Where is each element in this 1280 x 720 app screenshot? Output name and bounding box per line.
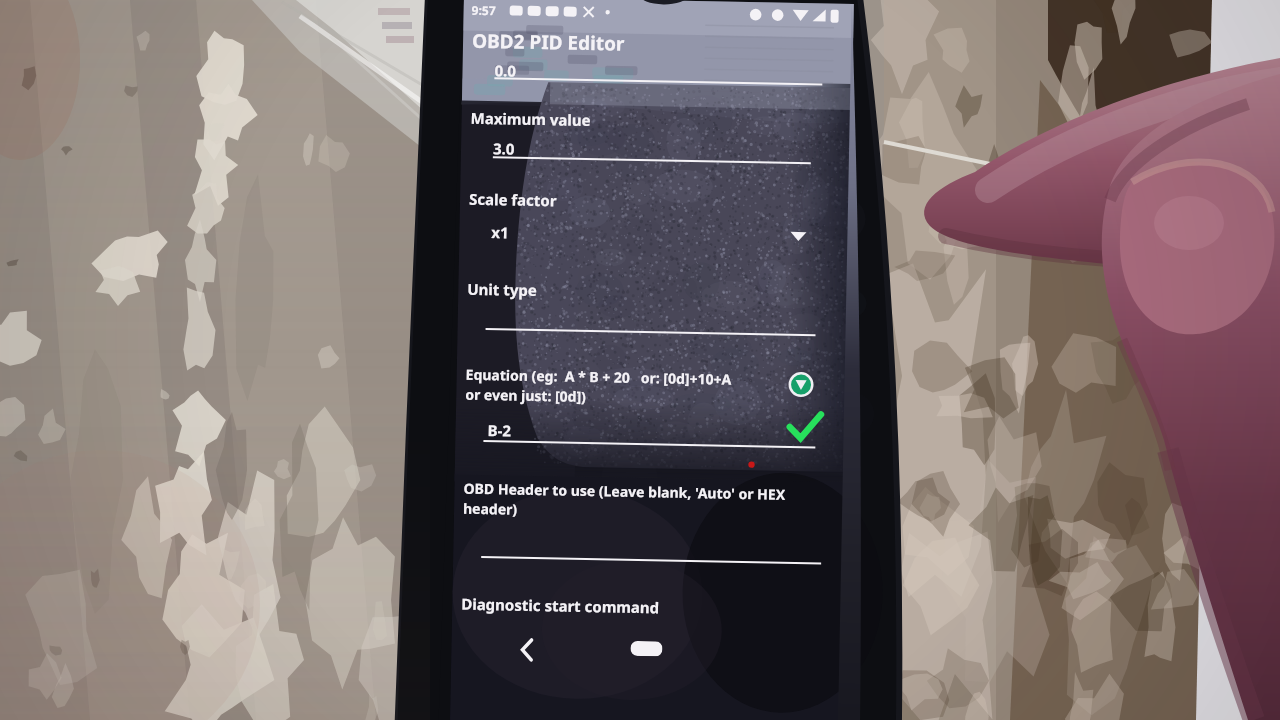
staticText: Maximum value <box>470 108 591 130</box>
button[interactable]: Home <box>630 641 663 656</box>
staticText: B-2 <box>487 420 512 441</box>
staticText: x1 <box>491 222 510 242</box>
staticText: 0.0 <box>494 60 517 81</box>
staticText: Unit type <box>467 279 537 300</box>
staticText: Scale factor <box>469 189 557 210</box>
staticText: Equation (eg: A * B + 20 or: [0d]+10+A o… <box>465 365 732 410</box>
button[interactable]: Equation help <box>788 372 814 397</box>
staticText: 9:57 <box>471 2 496 18</box>
button[interactable]: Scale factor dropdown <box>783 223 814 247</box>
staticText: OBD Header to use (Leave blank, 'Auto' o… <box>463 479 786 525</box>
staticText: Diagnostic start command <box>461 594 659 617</box>
button[interactable]: Back <box>513 636 542 664</box>
staticText: OBD2 PID Editor <box>472 28 625 57</box>
staticText: 3.0 <box>493 138 515 158</box>
